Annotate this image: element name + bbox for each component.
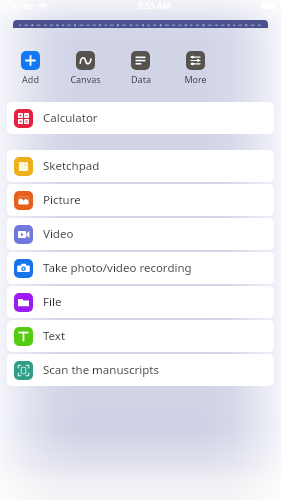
button[interactable]: Calculator	[7, 102, 274, 134]
button[interactable]: More	[168, 51, 223, 85]
button[interactable]: Data	[113, 51, 168, 85]
staticText: Carrier	[6, 0, 35, 12]
staticText: Take photo/video recording	[43, 260, 192, 276]
staticText: File	[43, 294, 62, 310]
staticText: Scan the manuscripts	[43, 362, 160, 378]
button[interactable]: Video	[7, 218, 274, 250]
staticText: Video	[43, 226, 74, 242]
button[interactable]: Text	[7, 320, 274, 352]
staticText: Text	[43, 328, 66, 344]
button[interactable]: Canvas	[58, 51, 113, 85]
button[interactable]: Scan the manuscripts	[7, 354, 274, 386]
staticText: Data	[131, 73, 151, 85]
button[interactable]: Sketchpad	[7, 150, 274, 182]
button[interactable]: Add	[3, 51, 58, 85]
button[interactable]: Take photo/video recording	[7, 252, 274, 284]
button[interactable]: Picture	[7, 184, 274, 216]
button[interactable]: File	[7, 286, 274, 318]
staticText: 8:53 AM	[138, 0, 171, 12]
staticText: Calculator	[43, 110, 98, 126]
staticText: Add	[22, 73, 39, 85]
staticText: Sketchpad	[43, 158, 100, 174]
staticText: More	[184, 73, 207, 85]
staticText: Picture	[43, 192, 81, 208]
staticText: Canvas	[70, 73, 101, 85]
